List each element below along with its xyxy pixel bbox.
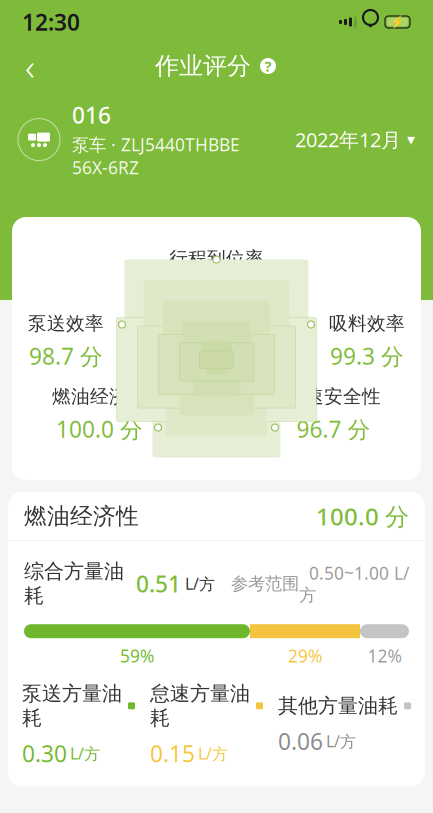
staticText: 综合方量油耗 xyxy=(24,559,124,608)
staticText: 吸料效率 xyxy=(329,312,405,335)
staticText: 99.3 分 xyxy=(330,341,404,371)
staticText: 0.50~1.00 L/方 xyxy=(299,561,409,606)
staticText: 怠速方量油耗 xyxy=(150,681,250,730)
staticText: 0.51 xyxy=(124,569,181,599)
staticText: 0.30 xyxy=(22,738,67,768)
button[interactable]: 2022年12月 xyxy=(295,126,415,153)
staticText: L/方 xyxy=(198,743,228,764)
staticText: 0.15 xyxy=(150,738,195,768)
staticText: ⚡ xyxy=(390,15,405,29)
staticText: 96.7 分 xyxy=(296,414,370,444)
button[interactable]: 帮助 xyxy=(258,56,278,76)
staticText: 泵送方量油耗 xyxy=(22,681,122,730)
staticText: L/方 xyxy=(181,573,215,594)
staticText: 100.0 分 xyxy=(56,414,143,444)
staticText: 其他方量油耗 xyxy=(278,693,398,718)
staticText: L/方 xyxy=(326,730,356,752)
staticText: 016 xyxy=(72,100,111,130)
staticText: ‹ xyxy=(25,41,35,91)
staticText: 99.5 分 xyxy=(179,276,253,306)
staticText: 行程到位率 xyxy=(169,247,264,270)
staticText: 燃油经济性 xyxy=(24,502,139,530)
staticText: 泵车 · ZLJ5440THBBE 56X-6RZ xyxy=(72,133,240,179)
staticText: 100.0 分 xyxy=(316,500,409,532)
staticText: L/方 xyxy=(70,743,100,764)
staticText: 98.7 分 xyxy=(29,341,103,371)
staticText: 作业评分 xyxy=(155,51,251,81)
staticText: 12:30 xyxy=(22,7,80,37)
staticText: ▾ xyxy=(407,130,415,149)
staticText: 0.06 xyxy=(278,726,323,756)
staticText: 2022年12月 xyxy=(295,126,401,153)
staticText: 参考范围 xyxy=(231,573,299,594)
staticText: 59% xyxy=(120,644,154,667)
staticText: ? xyxy=(264,56,271,76)
staticText: 泵送效率 xyxy=(28,312,104,335)
button[interactable]: Back xyxy=(8,44,52,88)
staticText: 燃油经济性 xyxy=(52,385,147,408)
staticText: 29% xyxy=(288,644,322,667)
staticText: 12% xyxy=(367,644,401,667)
staticText: 车速安全性 xyxy=(286,385,381,408)
